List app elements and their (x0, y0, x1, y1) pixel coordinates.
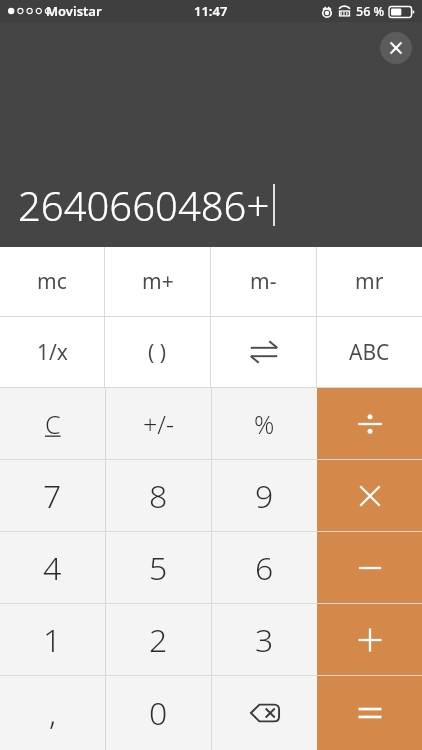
button[interactable]: 6 (212, 532, 317, 603)
button[interactable]: C (0, 388, 105, 459)
button[interactable]: ABC (317, 317, 422, 387)
staticText: ABC (349, 338, 390, 367)
button[interactable]: % (212, 388, 317, 459)
staticText: 56 % (356, 3, 385, 20)
staticText: % (254, 407, 275, 441)
staticText: m+ (142, 267, 174, 296)
staticText: Movistar (46, 2, 102, 20)
button[interactable]: 3 (212, 604, 317, 675)
staticText: 4 (43, 546, 62, 590)
button[interactable]: 8 (106, 460, 211, 531)
staticText: 2 (149, 618, 168, 662)
button[interactable]: 7 (0, 460, 105, 531)
staticText: +/- (143, 407, 175, 441)
button[interactable]: ( ) (105, 317, 210, 387)
button[interactable]: 1 (0, 604, 105, 675)
staticText: 9 (255, 474, 274, 518)
button[interactable]: Equals (317, 676, 422, 750)
button[interactable]: Add (317, 604, 422, 675)
button[interactable]: m- (211, 247, 316, 316)
button[interactable]: 1/x (0, 317, 104, 387)
button[interactable]: 4 (0, 532, 105, 603)
staticText: 1 (43, 618, 62, 662)
button[interactable]: +/- (106, 388, 211, 459)
staticText: C (45, 407, 61, 441)
button[interactable]: mc (0, 247, 104, 316)
staticText: 3 (255, 618, 274, 662)
button[interactable]: 0 (106, 676, 211, 750)
button[interactable]: m+ (105, 247, 210, 316)
button[interactable]: Subtract (317, 532, 422, 603)
staticText: 5 (149, 546, 168, 590)
staticText: ( ) (148, 338, 167, 367)
button[interactable]: 9 (212, 460, 317, 531)
button[interactable]: Close (380, 32, 412, 64)
staticText: 8 (149, 474, 168, 518)
staticText: m- (250, 267, 277, 296)
staticText: 11:47 (194, 2, 228, 20)
staticText: 7 (43, 474, 62, 518)
button[interactable]: 5 (106, 532, 211, 603)
staticText: mc (37, 267, 67, 296)
button[interactable]: Multiply (317, 460, 422, 531)
button[interactable]: Divide (317, 388, 422, 459)
staticText: , (49, 691, 57, 735)
staticText: 6 (255, 546, 274, 590)
button[interactable]: 2 (106, 604, 211, 675)
staticText: 1/x (37, 338, 68, 367)
staticText: 0 (149, 691, 168, 735)
button[interactable]: Swap units (211, 317, 316, 387)
button[interactable]: , (0, 676, 105, 750)
staticText: 2640660486+ (18, 178, 270, 232)
button[interactable]: mr (317, 247, 422, 316)
staticText: mr (355, 267, 384, 296)
button[interactable]: Backspace (212, 676, 317, 750)
